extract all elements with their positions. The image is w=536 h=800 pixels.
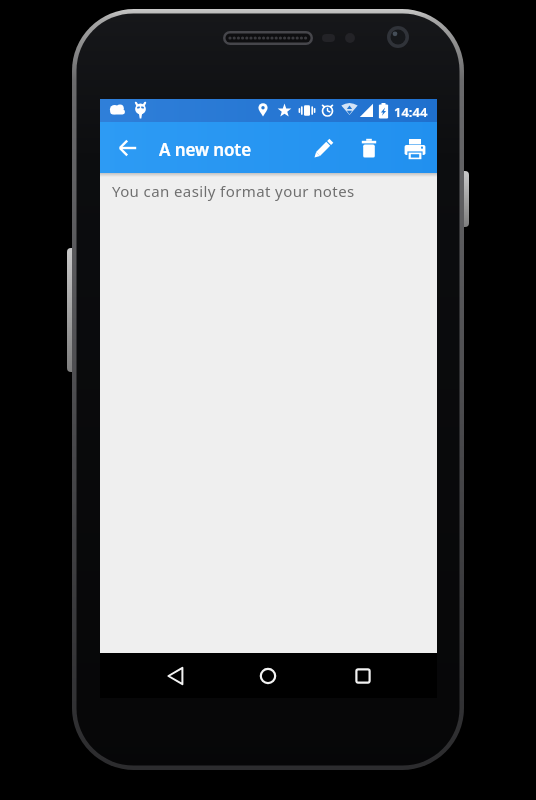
button[interactable] — [349, 129, 389, 169]
button[interactable] — [246, 653, 290, 698]
button[interactable] — [154, 653, 198, 698]
button[interactable] — [395, 129, 435, 169]
staticText: A new note — [159, 138, 252, 161]
button[interactable] — [341, 653, 385, 698]
button[interactable] — [108, 128, 148, 168]
staticText: You can easily format your notes — [112, 181, 355, 201]
staticText: 14:44 — [394, 103, 428, 121]
button[interactable] — [303, 129, 343, 169]
